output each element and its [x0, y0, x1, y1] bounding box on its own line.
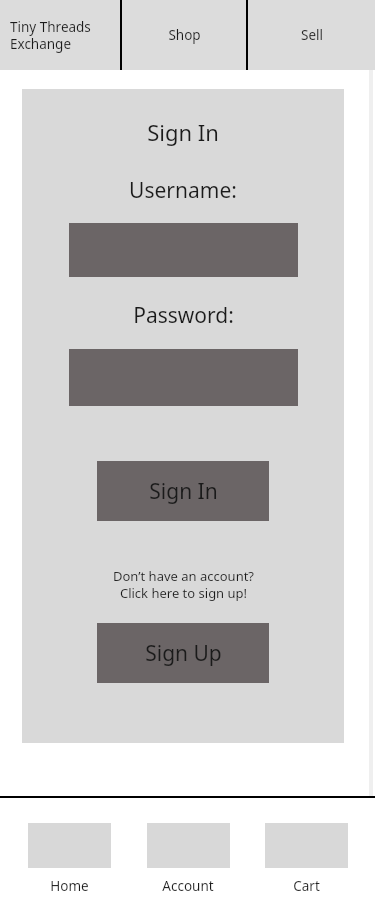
button[interactable]: Shop — [122, 0, 246, 70]
staticText: Password: — [133, 301, 234, 330]
staticText: Cart — [293, 877, 320, 895]
staticText: Account — [162, 877, 214, 895]
button[interactable]: Sell — [248, 0, 375, 70]
staticText: Sign In — [149, 477, 218, 506]
staticText: Tiny Threads Exchange — [10, 18, 91, 53]
staticText: Shop — [168, 26, 201, 44]
staticText: Don’t have an account? Click here to sig… — [113, 567, 254, 602]
button[interactable]: Home — [19, 798, 119, 895]
button[interactable]: Cart — [256, 798, 356, 895]
button[interactable]: Sign Up — [97, 623, 269, 683]
staticText: Sign In — [147, 117, 219, 147]
staticText: Home — [50, 877, 89, 895]
staticText: Username: — [129, 176, 237, 205]
button[interactable]: Account — [138, 798, 238, 895]
button[interactable]: Tiny Threads Exchange — [0, 0, 120, 70]
staticText: Sell — [301, 26, 323, 44]
staticText: Sign Up — [145, 639, 222, 668]
button[interactable]: Don’t have an account? Click here to sig… — [107, 565, 260, 604]
button[interactable]: Sign In — [97, 461, 269, 521]
